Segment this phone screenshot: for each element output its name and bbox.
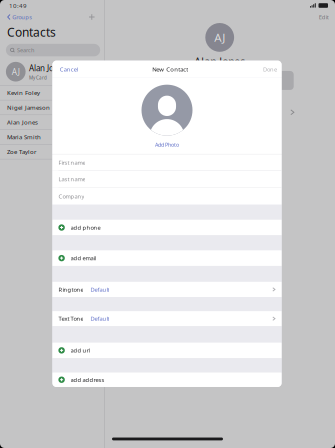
- button[interactable]: Text Tone: [52, 311, 282, 326]
- button[interactable]: Ringtone: [52, 282, 282, 297]
- staticText: AJ: [12, 66, 20, 77]
- staticText: Contacts: [7, 24, 56, 40]
- staticText: New Contact: [152, 65, 188, 73]
- button[interactable]: Edit: [316, 10, 332, 24]
- staticText: Maria Smith: [7, 133, 41, 141]
- staticText: Groups: [12, 13, 32, 21]
- staticText: Ringtone: [58, 285, 83, 293]
- staticText: Default: [90, 285, 109, 293]
- staticText: Cancel: [60, 65, 78, 73]
- button[interactable]: Add Photo: [155, 141, 179, 148]
- button[interactable]: Groups: [7, 11, 32, 23]
- button[interactable]: Nigel Jameson: [0, 100, 104, 115]
- button[interactable]: Contact action: [146, 71, 177, 90]
- staticText: My Card: [29, 75, 47, 81]
- staticText: Text Tone: [58, 315, 83, 322]
- staticText: Default: [90, 315, 109, 322]
- button[interactable]: Zoe Taylor: [0, 144, 104, 159]
- button[interactable]: add url: [52, 343, 282, 358]
- button[interactable]: Cancel: [52, 62, 81, 76]
- staticText: Nigel Jameson: [7, 103, 50, 112]
- staticText: Search: [17, 46, 34, 54]
- button[interactable]: Add contact: [87, 12, 97, 22]
- button[interactable]: Contact action: [185, 71, 216, 90]
- button[interactable]: Alan Jones: [0, 115, 104, 130]
- staticText: Done: [263, 65, 277, 73]
- staticText: Add Photo: [155, 141, 179, 148]
- staticText: Zoe Taylor: [7, 148, 36, 156]
- button[interactable]: add phone: [52, 220, 282, 235]
- staticText: add email: [71, 254, 96, 262]
- staticText: add phone: [71, 224, 101, 231]
- staticText: 10:49: [9, 1, 27, 10]
- staticText: Last name: [58, 175, 85, 183]
- button[interactable]: add email: [52, 250, 282, 266]
- staticText: Alan Jones: [194, 54, 245, 68]
- staticText: Alan Jo: [29, 63, 54, 74]
- button[interactable]: Contact action: [263, 71, 294, 90]
- staticText: AJ: [214, 30, 225, 45]
- staticText: Company: [58, 192, 84, 200]
- button[interactable]: Kevin Foley: [0, 85, 104, 100]
- staticText: add url: [71, 346, 90, 354]
- staticText: Kevin Foley: [7, 89, 40, 97]
- button[interactable]: Maria Smith: [0, 130, 104, 145]
- staticText: add address: [71, 376, 105, 384]
- staticText: First name: [58, 159, 85, 166]
- button[interactable]: Done: [260, 62, 282, 76]
- staticText: Edit: [319, 13, 329, 21]
- staticText: Alan Jones: [7, 118, 38, 126]
- button[interactable]: add address: [52, 372, 282, 387]
